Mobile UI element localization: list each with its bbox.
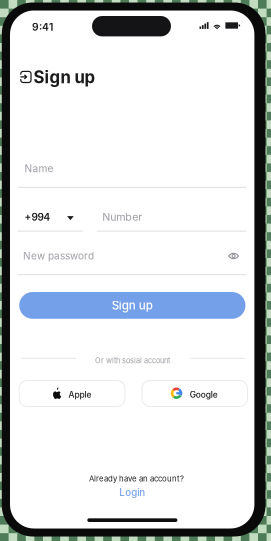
staticText: Apple bbox=[68, 389, 91, 400]
button[interactable]: Google bbox=[142, 380, 247, 406]
staticText: 9:41 bbox=[32, 21, 53, 33]
staticText: Google bbox=[190, 389, 218, 400]
staticText: Name bbox=[25, 162, 54, 175]
staticText: Already have an account? bbox=[89, 474, 184, 483]
staticText: New password bbox=[23, 250, 94, 262]
staticText: Number bbox=[102, 210, 142, 223]
staticText: Login bbox=[119, 487, 145, 498]
staticText: Or with sosial account bbox=[95, 356, 170, 365]
button[interactable]: Sign up bbox=[19, 292, 245, 319]
staticText: Sign up bbox=[34, 67, 96, 87]
staticText: Sign up bbox=[112, 298, 153, 312]
button[interactable]: Login bbox=[119, 487, 145, 498]
button[interactable]: Apple bbox=[19, 380, 125, 406]
staticText: +994 bbox=[25, 211, 51, 223]
